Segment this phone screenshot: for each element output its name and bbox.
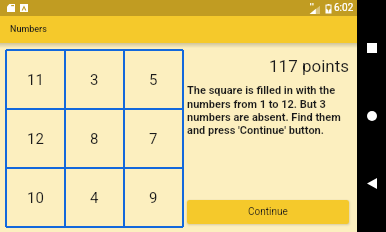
button[interactable]: Recents xyxy=(357,33,386,62)
button[interactable]: 12 xyxy=(6,109,65,168)
staticText: 6:02 xyxy=(334,2,354,14)
button[interactable]: 9 xyxy=(124,168,183,227)
staticText: 11 xyxy=(27,71,44,89)
staticText: 9 xyxy=(149,189,158,207)
staticText: 10 xyxy=(27,189,44,207)
staticText: 3 xyxy=(90,71,99,89)
button[interactable]: 5 xyxy=(124,50,183,109)
button[interactable]: 3 xyxy=(65,50,124,109)
button[interactable]: 4 xyxy=(65,168,124,227)
staticText: 7 xyxy=(149,130,158,148)
staticText: 4 xyxy=(90,189,99,207)
staticText: 12 xyxy=(27,130,44,148)
button[interactable]: 10 xyxy=(6,168,65,227)
staticText: Numbers xyxy=(10,24,47,35)
staticText: 8 xyxy=(90,130,99,148)
button[interactable]: Back xyxy=(357,169,386,198)
staticText: 117 points xyxy=(187,56,349,76)
staticText: 5 xyxy=(149,71,158,89)
button[interactable]: Home xyxy=(357,101,386,130)
button[interactable]: 7 xyxy=(124,109,183,168)
button[interactable]: Continue xyxy=(187,200,349,224)
staticText: The square is filled in with the numbers… xyxy=(187,84,349,136)
staticText: Continue xyxy=(248,206,288,218)
button[interactable]: 8 xyxy=(65,109,124,168)
button[interactable]: 11 xyxy=(6,50,65,109)
